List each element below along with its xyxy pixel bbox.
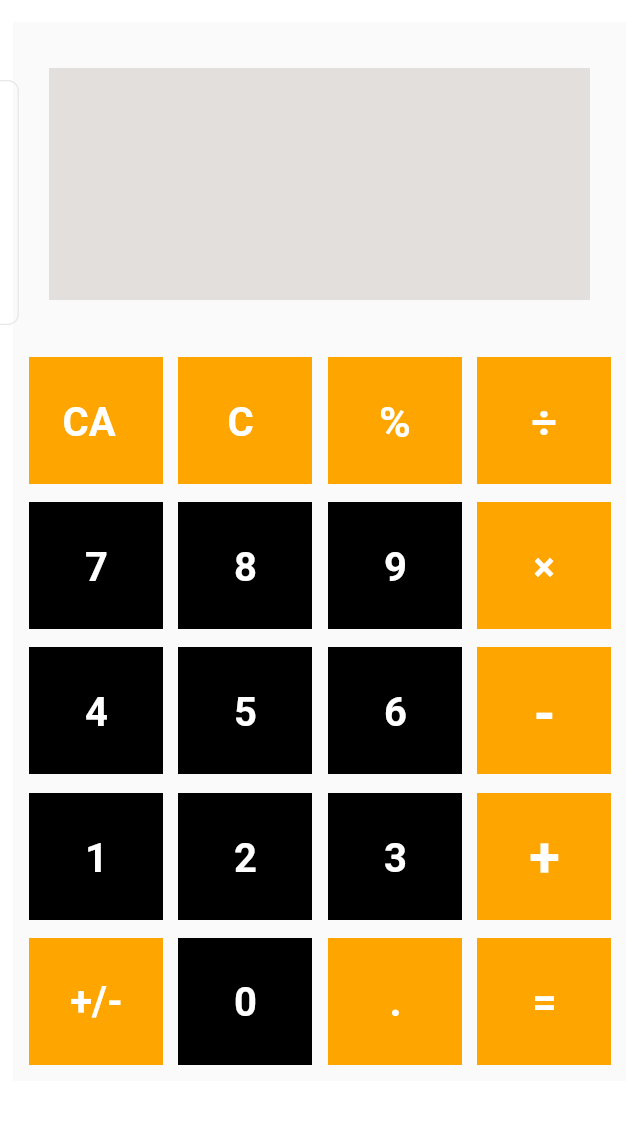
staticText: 3 — [384, 835, 407, 882]
button[interactable]: Equals — [477, 938, 611, 1065]
staticText: = — [532, 977, 557, 1027]
button[interactable]: Five — [178, 647, 312, 774]
staticText: 2 — [234, 835, 257, 882]
staticText: × — [533, 544, 555, 591]
button[interactable]: Three — [328, 793, 462, 920]
staticText: 4 — [85, 689, 108, 736]
button[interactable]: Four — [29, 647, 163, 774]
staticText: 6 — [384, 689, 407, 736]
button[interactable]: Six — [328, 647, 462, 774]
button[interactable]: Decimal point — [328, 938, 462, 1065]
button[interactable]: Clear — [178, 357, 312, 484]
staticText: 0 — [234, 979, 257, 1026]
staticText: 1 — [85, 835, 108, 882]
staticText: C — [227, 399, 254, 446]
staticText: CA — [62, 399, 116, 446]
button[interactable]: Nine — [328, 502, 462, 629]
button[interactable]: Zero — [178, 938, 312, 1065]
button[interactable]: Minus — [477, 647, 611, 774]
staticText: ÷ — [531, 396, 557, 449]
staticText: 8 — [234, 544, 257, 591]
staticText: 7 — [85, 544, 108, 591]
button[interactable]: Percent — [328, 357, 462, 484]
button[interactable]: Two — [178, 793, 312, 920]
staticText: - — [533, 681, 556, 747]
button[interactable]: Plus minus — [29, 938, 163, 1065]
button[interactable]: One — [29, 793, 163, 920]
staticText: . — [389, 977, 402, 1026]
staticText: % — [379, 397, 411, 447]
button[interactable]: Divide — [477, 357, 611, 484]
staticText: 9 — [384, 544, 407, 591]
staticText: +/- — [70, 978, 123, 1025]
staticText: 5 — [234, 689, 257, 736]
staticText: + — [529, 824, 560, 890]
button[interactable]: Eight — [178, 502, 312, 629]
button[interactable]: Plus — [477, 793, 611, 920]
button[interactable]: Clear all — [29, 357, 163, 484]
button[interactable]: Multiply — [477, 502, 611, 629]
button[interactable]: Seven — [29, 502, 163, 629]
